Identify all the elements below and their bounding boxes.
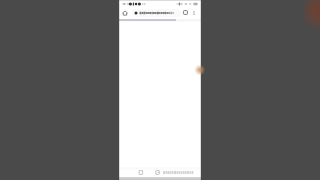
button[interactable]: More options [191,10,197,16]
button[interactable] [132,9,181,17]
button[interactable]: Tabs [183,10,188,15]
button[interactable] [119,167,201,177]
button[interactable]: Home [122,10,128,16]
